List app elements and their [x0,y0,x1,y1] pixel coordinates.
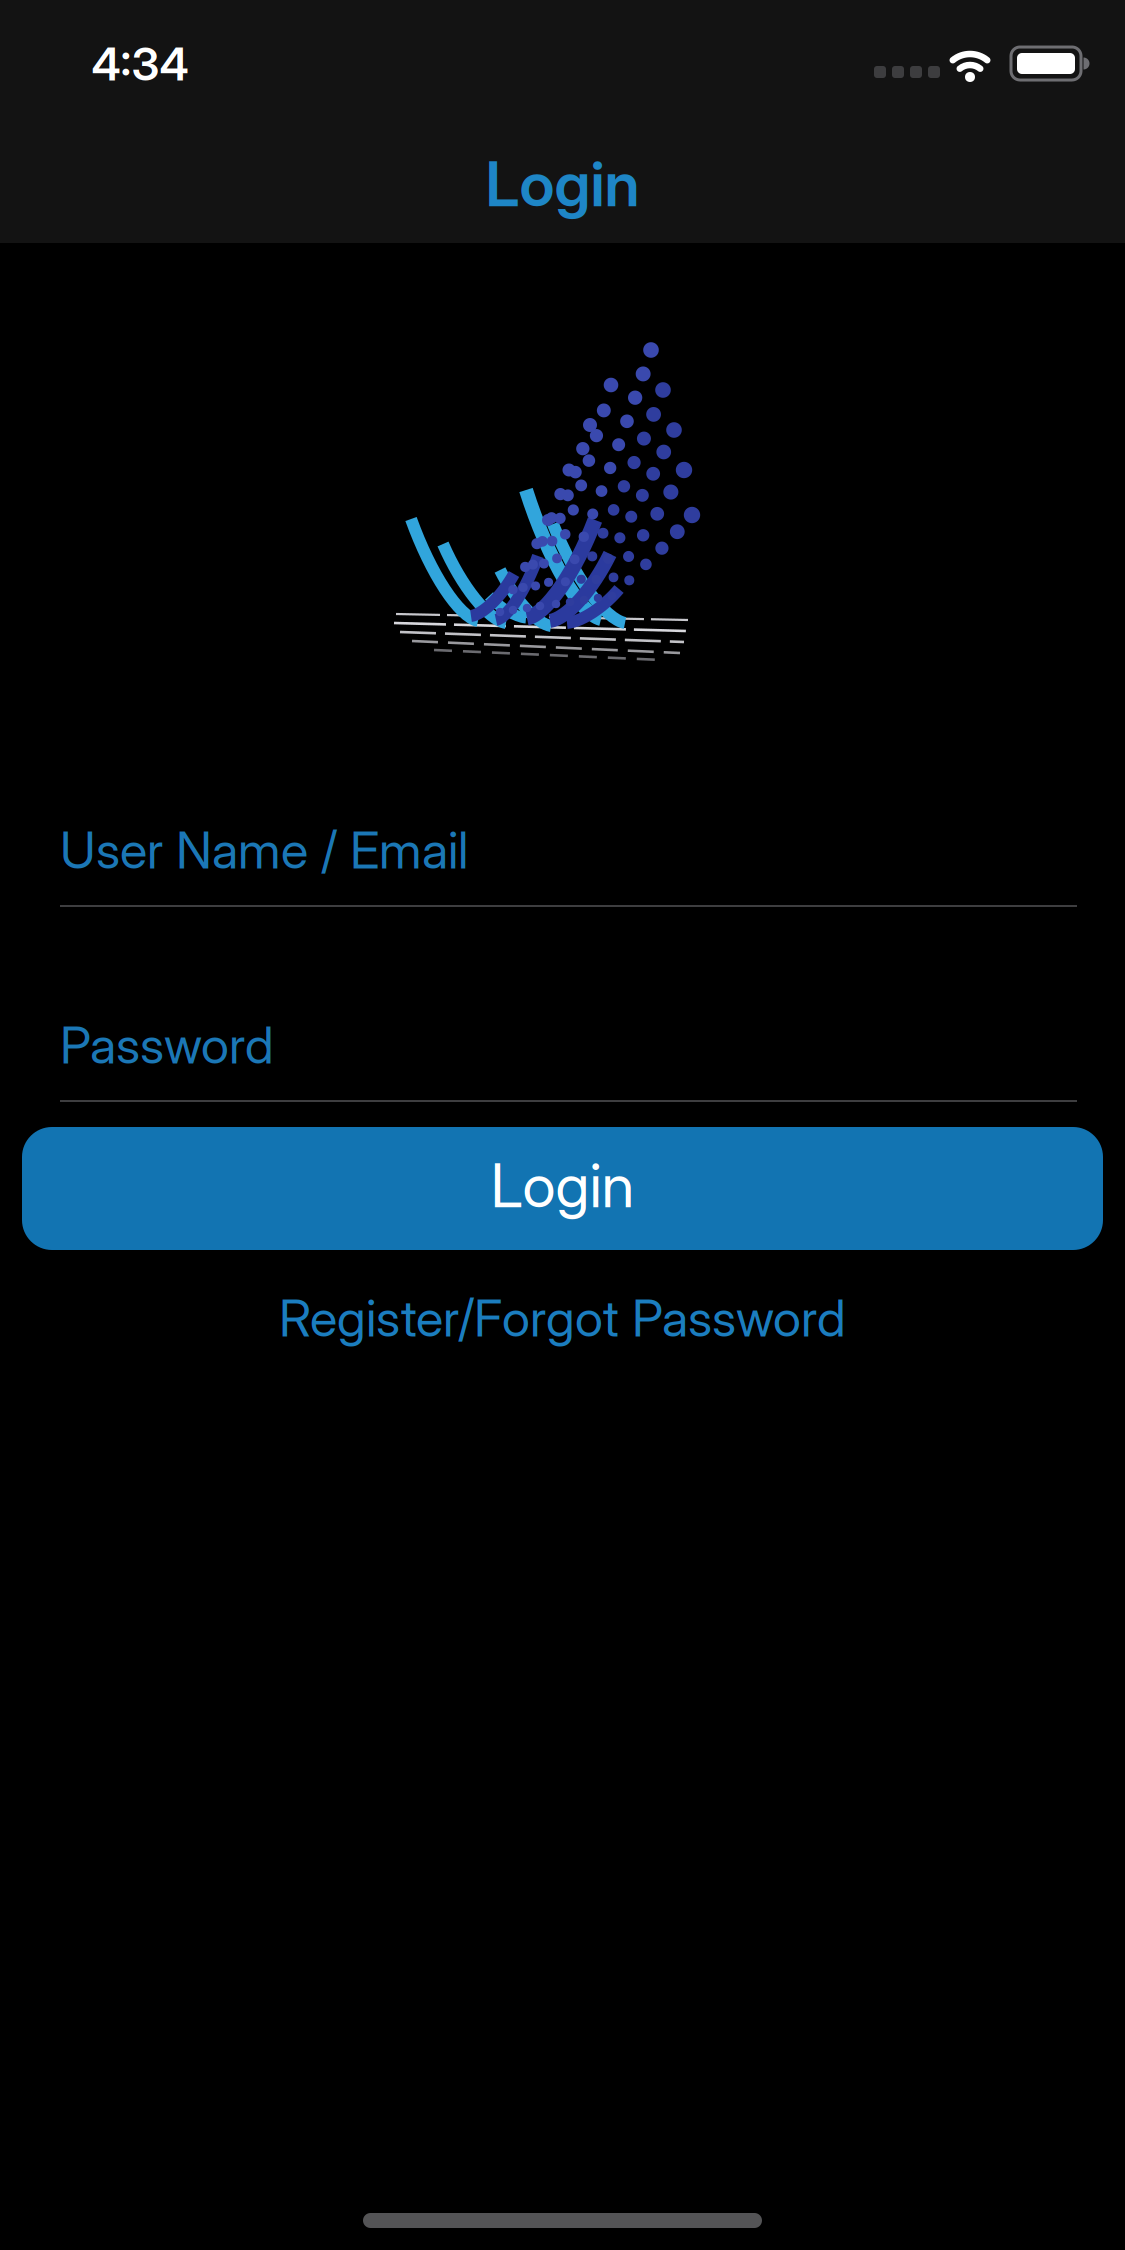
staticText: Register/Forgot Password [279,1288,846,1348]
staticText: User Name / Email [60,820,468,880]
staticText: 4:34 [91,37,188,91]
button[interactable]: Register/Forgot Password [279,1288,846,1348]
button[interactable]: Login [22,1127,1103,1250]
staticText: Login [490,1150,634,1221]
staticText: Password [60,1015,274,1075]
button[interactable]: Password [60,1009,1077,1101]
staticText: Login [485,148,639,220]
button[interactable]: User Name / Email [60,814,1077,906]
